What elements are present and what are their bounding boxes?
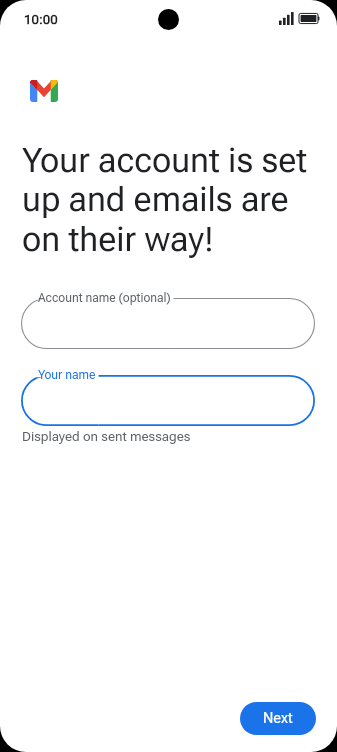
other: Signal and battery status bbox=[279, 12, 321, 25]
button[interactable] bbox=[21, 298, 315, 349]
staticText: Your name bbox=[38, 368, 96, 382]
button[interactable] bbox=[21, 375, 315, 426]
staticText: 10:00 bbox=[24, 12, 58, 27]
staticText: Displayed on sent messages bbox=[22, 429, 191, 445]
staticText: Next bbox=[263, 710, 293, 727]
staticText: Account name (optional) bbox=[38, 291, 171, 305]
button[interactable]: Next bbox=[240, 702, 316, 735]
staticText: Your account is set up and emails are on… bbox=[22, 140, 320, 260]
